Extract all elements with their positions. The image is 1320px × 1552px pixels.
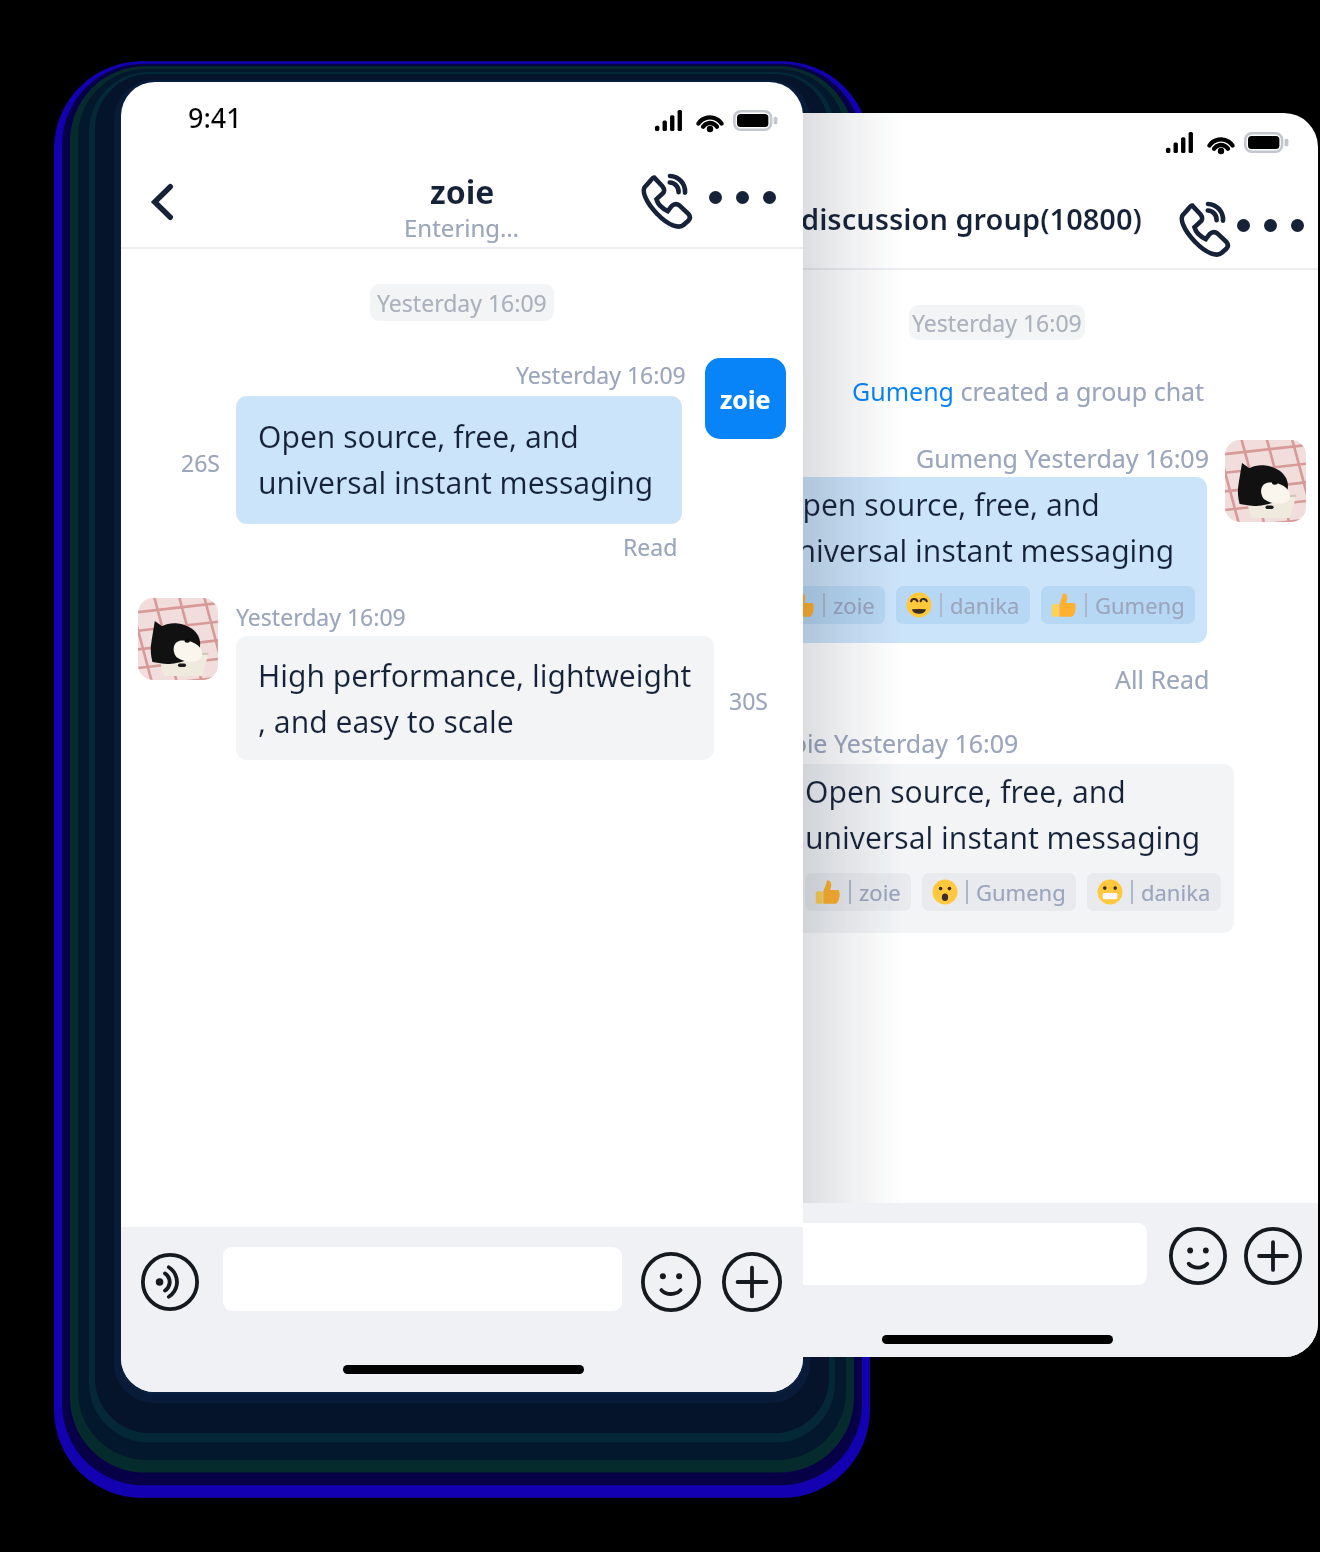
staticText: zoie — [430, 170, 495, 214]
button[interactable]: zoie — [815, 873, 901, 911]
staticText: 9:41 — [188, 99, 242, 136]
button[interactable]: zoie — [705, 358, 786, 439]
button[interactable]: Open source, free, and universal instant… — [757, 477, 1207, 643]
staticText: created a group chat — [954, 374, 1205, 408]
staticText: Open source, free, and universal instant… — [805, 771, 1201, 858]
staticText: Gumeng Yesterday 16:09 — [916, 441, 1209, 475]
button[interactable]: High performance, lightweight , and easy… — [236, 636, 714, 760]
button[interactable]: Open source, free, and universal instant… — [236, 396, 682, 524]
button[interactable]: More options — [1233, 188, 1307, 262]
staticText: danika — [950, 590, 1020, 620]
staticText: Gumeng — [976, 877, 1066, 907]
button[interactable]: danika — [1097, 873, 1211, 911]
staticText: 26S — [181, 447, 220, 478]
staticText: Yesterday 16:09 — [377, 287, 547, 318]
button[interactable]: Gumeng — [932, 873, 1066, 911]
button[interactable]: Back — [125, 165, 199, 239]
button[interactable]: Voice message — [137, 1249, 203, 1315]
button[interactable]: danika — [906, 586, 1020, 624]
button[interactable]: Gumeng — [1051, 586, 1185, 624]
staticText: Yesterday 16:09 — [236, 601, 406, 632]
staticText: 30S — [729, 685, 768, 716]
staticText: zoie — [859, 877, 901, 907]
staticText: High performance, lightweight , and easy… — [258, 655, 692, 742]
button[interactable]: Emoji — [638, 1249, 704, 1315]
staticText: danika — [1141, 877, 1211, 907]
staticText: Entering… — [404, 211, 520, 244]
staticText: zoie Yesterday 16:09 — [780, 726, 1019, 760]
button[interactable]: More options — [705, 160, 779, 234]
button[interactable]: Open source, free, and universal instant… — [783, 764, 1234, 933]
button[interactable]: Gumeng profile photo — [1225, 440, 1306, 522]
button[interactable] — [745, 1223, 1147, 1285]
staticText: Yesterday 16:09 — [516, 359, 686, 390]
button[interactable]: Voice call — [1165, 188, 1239, 262]
button[interactable]: Add attachment — [1240, 1223, 1306, 1289]
button[interactable]: Add attachment — [719, 1249, 785, 1315]
staticText: Read — [623, 531, 678, 562]
staticText: discussion group(10800) — [801, 199, 1142, 238]
staticText: Yesterday 16:09 — [912, 307, 1082, 338]
staticText: Gumeng — [1095, 590, 1185, 620]
staticText: Gumeng — [852, 374, 954, 408]
staticText: Open source, free, and universal instant… — [258, 416, 654, 503]
staticText: zoie — [720, 382, 771, 416]
button[interactable]: Voice call — [627, 160, 701, 234]
staticText: zoie — [833, 590, 875, 620]
staticText: All Read — [1115, 662, 1210, 696]
button[interactable]: Emoji — [1165, 1223, 1231, 1289]
staticText: Open source, free, and universal instant… — [779, 484, 1175, 571]
button[interactable]: zoie — [789, 586, 875, 624]
button[interactable]: zoie profile photo — [138, 598, 218, 680]
